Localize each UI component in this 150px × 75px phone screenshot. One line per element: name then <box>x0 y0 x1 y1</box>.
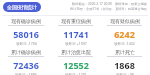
staticText: 6242 <box>114 28 135 40</box>
staticText: 累计死亡 <box>115 49 135 55</box>
staticText: 较昨日 +98 <box>116 72 134 75</box>
staticText: 统计范围：全国31省（自治区、直辖市）和港澳台地区 <box>70 7 147 11</box>
button[interactable]: 累计确诊病例 <box>1 49 51 75</box>
staticText: 58016 <box>13 28 39 40</box>
staticText: 现有疑似病例 <box>110 18 140 24</box>
staticText: 累计治愈出院 <box>61 49 91 55</box>
staticText: 72436 <box>13 59 39 71</box>
staticText: 较昨日 -1704 <box>16 41 37 46</box>
staticText: 11741 <box>63 28 89 40</box>
button[interactable]: 现有重症病例 <box>51 18 100 46</box>
button[interactable]: 全国疫情统计 <box>3 2 41 12</box>
staticText: 全国疫情统计 <box>7 4 37 10</box>
staticText: 现有重症病例 <box>61 18 91 24</box>
button[interactable]: 累计死亡 <box>100 49 149 75</box>
staticText: 较昨日 +1701 <box>65 72 87 75</box>
staticText: 1868 <box>114 59 135 71</box>
button[interactable]: 现有疑似病例 <box>100 18 149 46</box>
button[interactable]: 现有确诊病例 <box>1 18 51 46</box>
staticText: 较昨日 +1886 <box>15 72 37 75</box>
staticText: 累计确诊病例 <box>11 49 41 55</box>
button[interactable]: 累计治愈出院 <box>51 49 100 75</box>
staticText: 较昨日 -1432 <box>114 41 135 46</box>
staticText: 较昨日 +1097 <box>65 41 87 46</box>
staticText: 现有确诊病例 <box>11 18 41 24</box>
staticText: 数据截至：2020-2-17 20:00 数据来源：国家卫健委 <box>72 2 147 6</box>
staticText: 12552 <box>63 59 89 71</box>
